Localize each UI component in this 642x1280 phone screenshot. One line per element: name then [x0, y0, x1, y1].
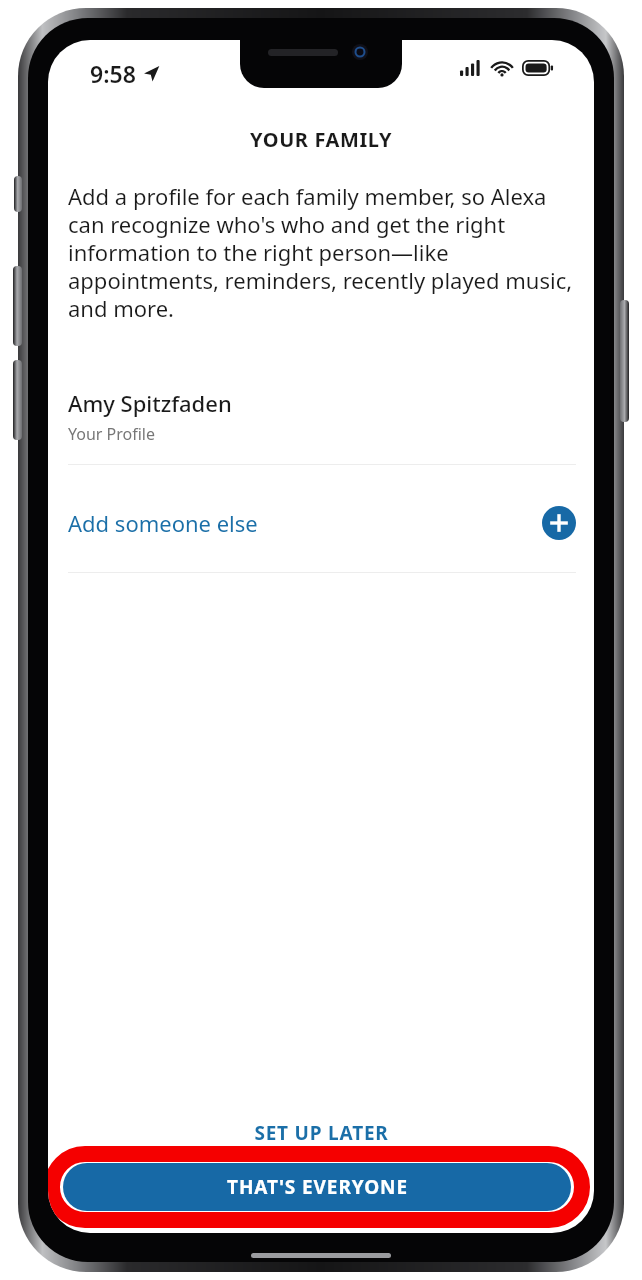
staticText: SET UP LATER — [254, 1120, 389, 1146]
button[interactable]: SET UP LATER — [48, 1116, 594, 1150]
staticText: Add a profile for each family member, so… — [68, 181, 580, 324]
button[interactable]: Add someone else — [68, 484, 576, 562]
other: Add someone else — [542, 506, 576, 540]
staticText: Amy Spitzfaden — [68, 388, 232, 418]
button[interactable]: THAT'S EVERYONE — [63, 1163, 571, 1211]
staticText: Your Profile — [68, 423, 156, 445]
staticText: 9:58 — [90, 58, 136, 89]
staticText: YOUR FAMILY — [250, 126, 393, 153]
staticText: Add someone else — [68, 508, 258, 538]
button[interactable]: Amy Spitzfaden — [68, 388, 576, 445]
staticText: THAT'S EVERYONE — [227, 1174, 408, 1200]
